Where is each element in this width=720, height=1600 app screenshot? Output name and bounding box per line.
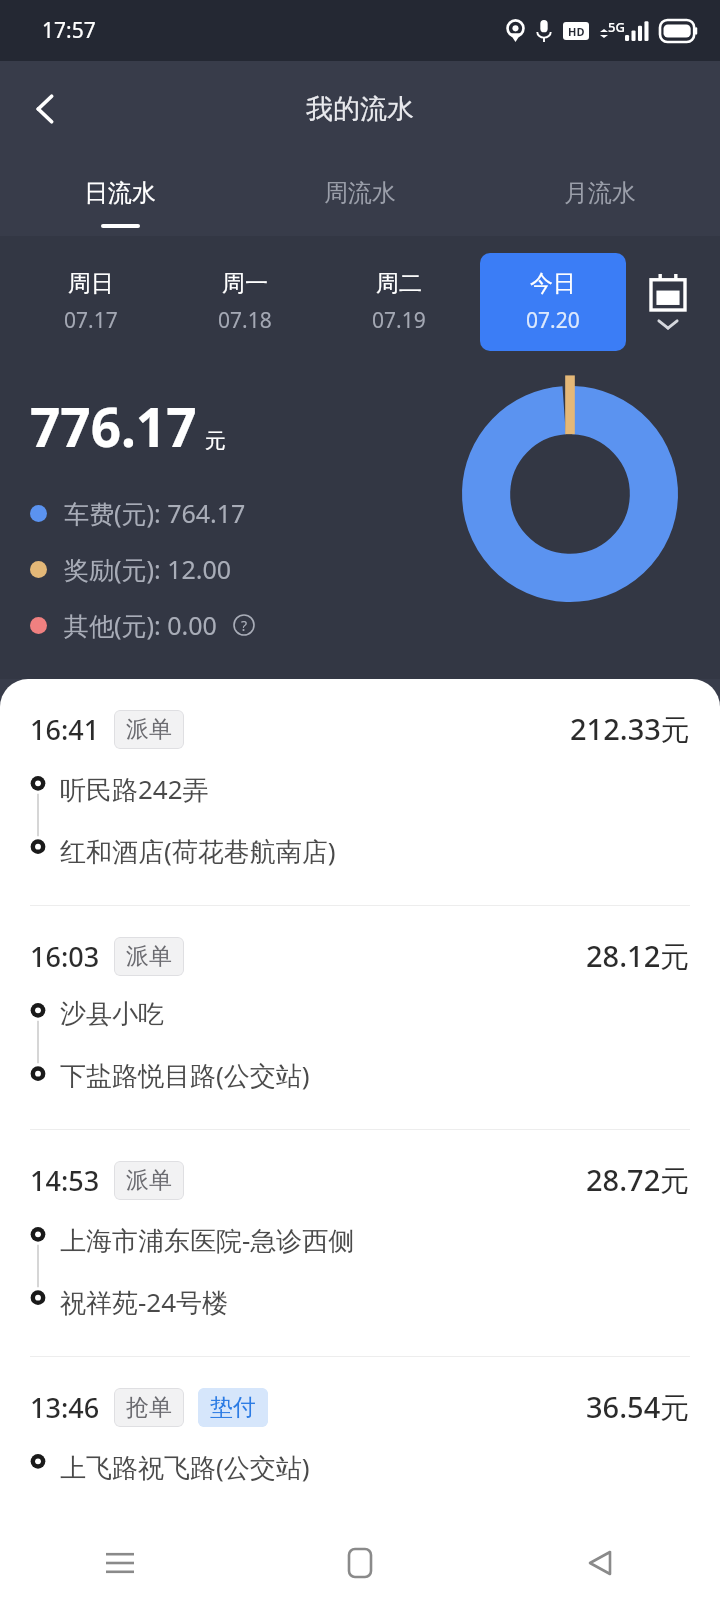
staticText: 垫付 <box>210 1393 256 1422</box>
staticText: 周流水 <box>324 178 396 208</box>
staticText: 周二 <box>376 269 422 298</box>
staticText: 13:46 <box>30 1389 100 1426</box>
button[interactable]: 派单 <box>114 937 184 976</box>
button[interactable]: Choose date <box>630 252 706 352</box>
button[interactable]: 月流水 <box>480 156 720 236</box>
staticText: 16:03 <box>30 938 100 975</box>
staticText: 日流水 <box>84 178 156 208</box>
button[interactable]: 周流水 <box>240 156 480 236</box>
button[interactable]: Home <box>240 1525 480 1600</box>
staticText: 派单 <box>126 715 172 744</box>
staticText: 17:57 <box>42 16 96 45</box>
staticText: 28.72元 <box>586 1160 690 1200</box>
staticText: 5G <box>608 18 625 36</box>
button[interactable]: 垫付 <box>198 1388 268 1427</box>
staticText: 16:41 <box>30 711 100 748</box>
staticText: 红和酒店(荷花巷航南店) <box>60 833 336 869</box>
button[interactable]: 派单 <box>114 1161 184 1200</box>
button[interactable]: Back <box>480 1525 720 1600</box>
staticText: 28.12元 <box>586 936 690 976</box>
staticText: 上飞路祝飞路(公交站) <box>60 1449 310 1485</box>
staticText: 听民路242弄 <box>60 771 209 807</box>
button[interactable]: 今日 <box>480 253 626 351</box>
button[interactable]: 16:41 <box>0 679 720 905</box>
staticText: 车费(元): 764.17 <box>64 496 246 530</box>
button[interactable]: 周一 <box>172 253 318 351</box>
staticText: 周日 <box>68 269 114 298</box>
staticText: 我的流水 <box>306 92 414 126</box>
staticText: 07.17 <box>64 306 118 335</box>
staticText: 沙县小吃 <box>60 998 164 1031</box>
staticText: 派单 <box>126 1166 172 1195</box>
staticText: 派单 <box>126 942 172 971</box>
staticText: 元 <box>205 428 226 454</box>
staticText: 上海市浦东医院-急诊西侧 <box>60 1222 355 1258</box>
staticText: 212.33元 <box>570 709 690 749</box>
staticText: 下盐路悦目路(公交站) <box>60 1057 310 1093</box>
staticText: 07.19 <box>372 306 426 335</box>
button[interactable]: 13:46 <box>0 1357 720 1495</box>
staticText: 36.54元 <box>586 1387 690 1427</box>
button[interactable]: Back <box>18 83 70 135</box>
button[interactable]: 派单 <box>114 710 184 749</box>
staticText: 其他(元): 0.00 <box>64 608 217 642</box>
button[interactable]: 16:03 <box>0 906 720 1129</box>
staticText: 奖励(元): 12.00 <box>64 552 232 586</box>
staticText: 今日 <box>530 269 576 298</box>
button[interactable]: 日流水 <box>0 156 240 236</box>
button[interactable]: 周日 <box>18 253 164 351</box>
staticText: 07.18 <box>218 306 272 335</box>
staticText: ? <box>241 616 248 635</box>
button[interactable]: 14:53 <box>0 1130 720 1356</box>
button[interactable]: 抢单 <box>114 1388 184 1427</box>
staticText: 祝祥苑-24号楼 <box>60 1284 229 1320</box>
staticText: 周一 <box>222 269 268 298</box>
staticText: 07.20 <box>526 306 580 335</box>
button[interactable]: Recent apps <box>0 1525 240 1600</box>
staticText: 抢单 <box>126 1393 172 1422</box>
staticText: 14:53 <box>30 1162 100 1199</box>
staticText: HD <box>568 24 585 39</box>
button[interactable]: Help about other income <box>229 610 259 640</box>
staticText: 776.17 <box>30 390 197 462</box>
staticText: 月流水 <box>564 178 636 208</box>
button[interactable]: 周二 <box>326 253 472 351</box>
